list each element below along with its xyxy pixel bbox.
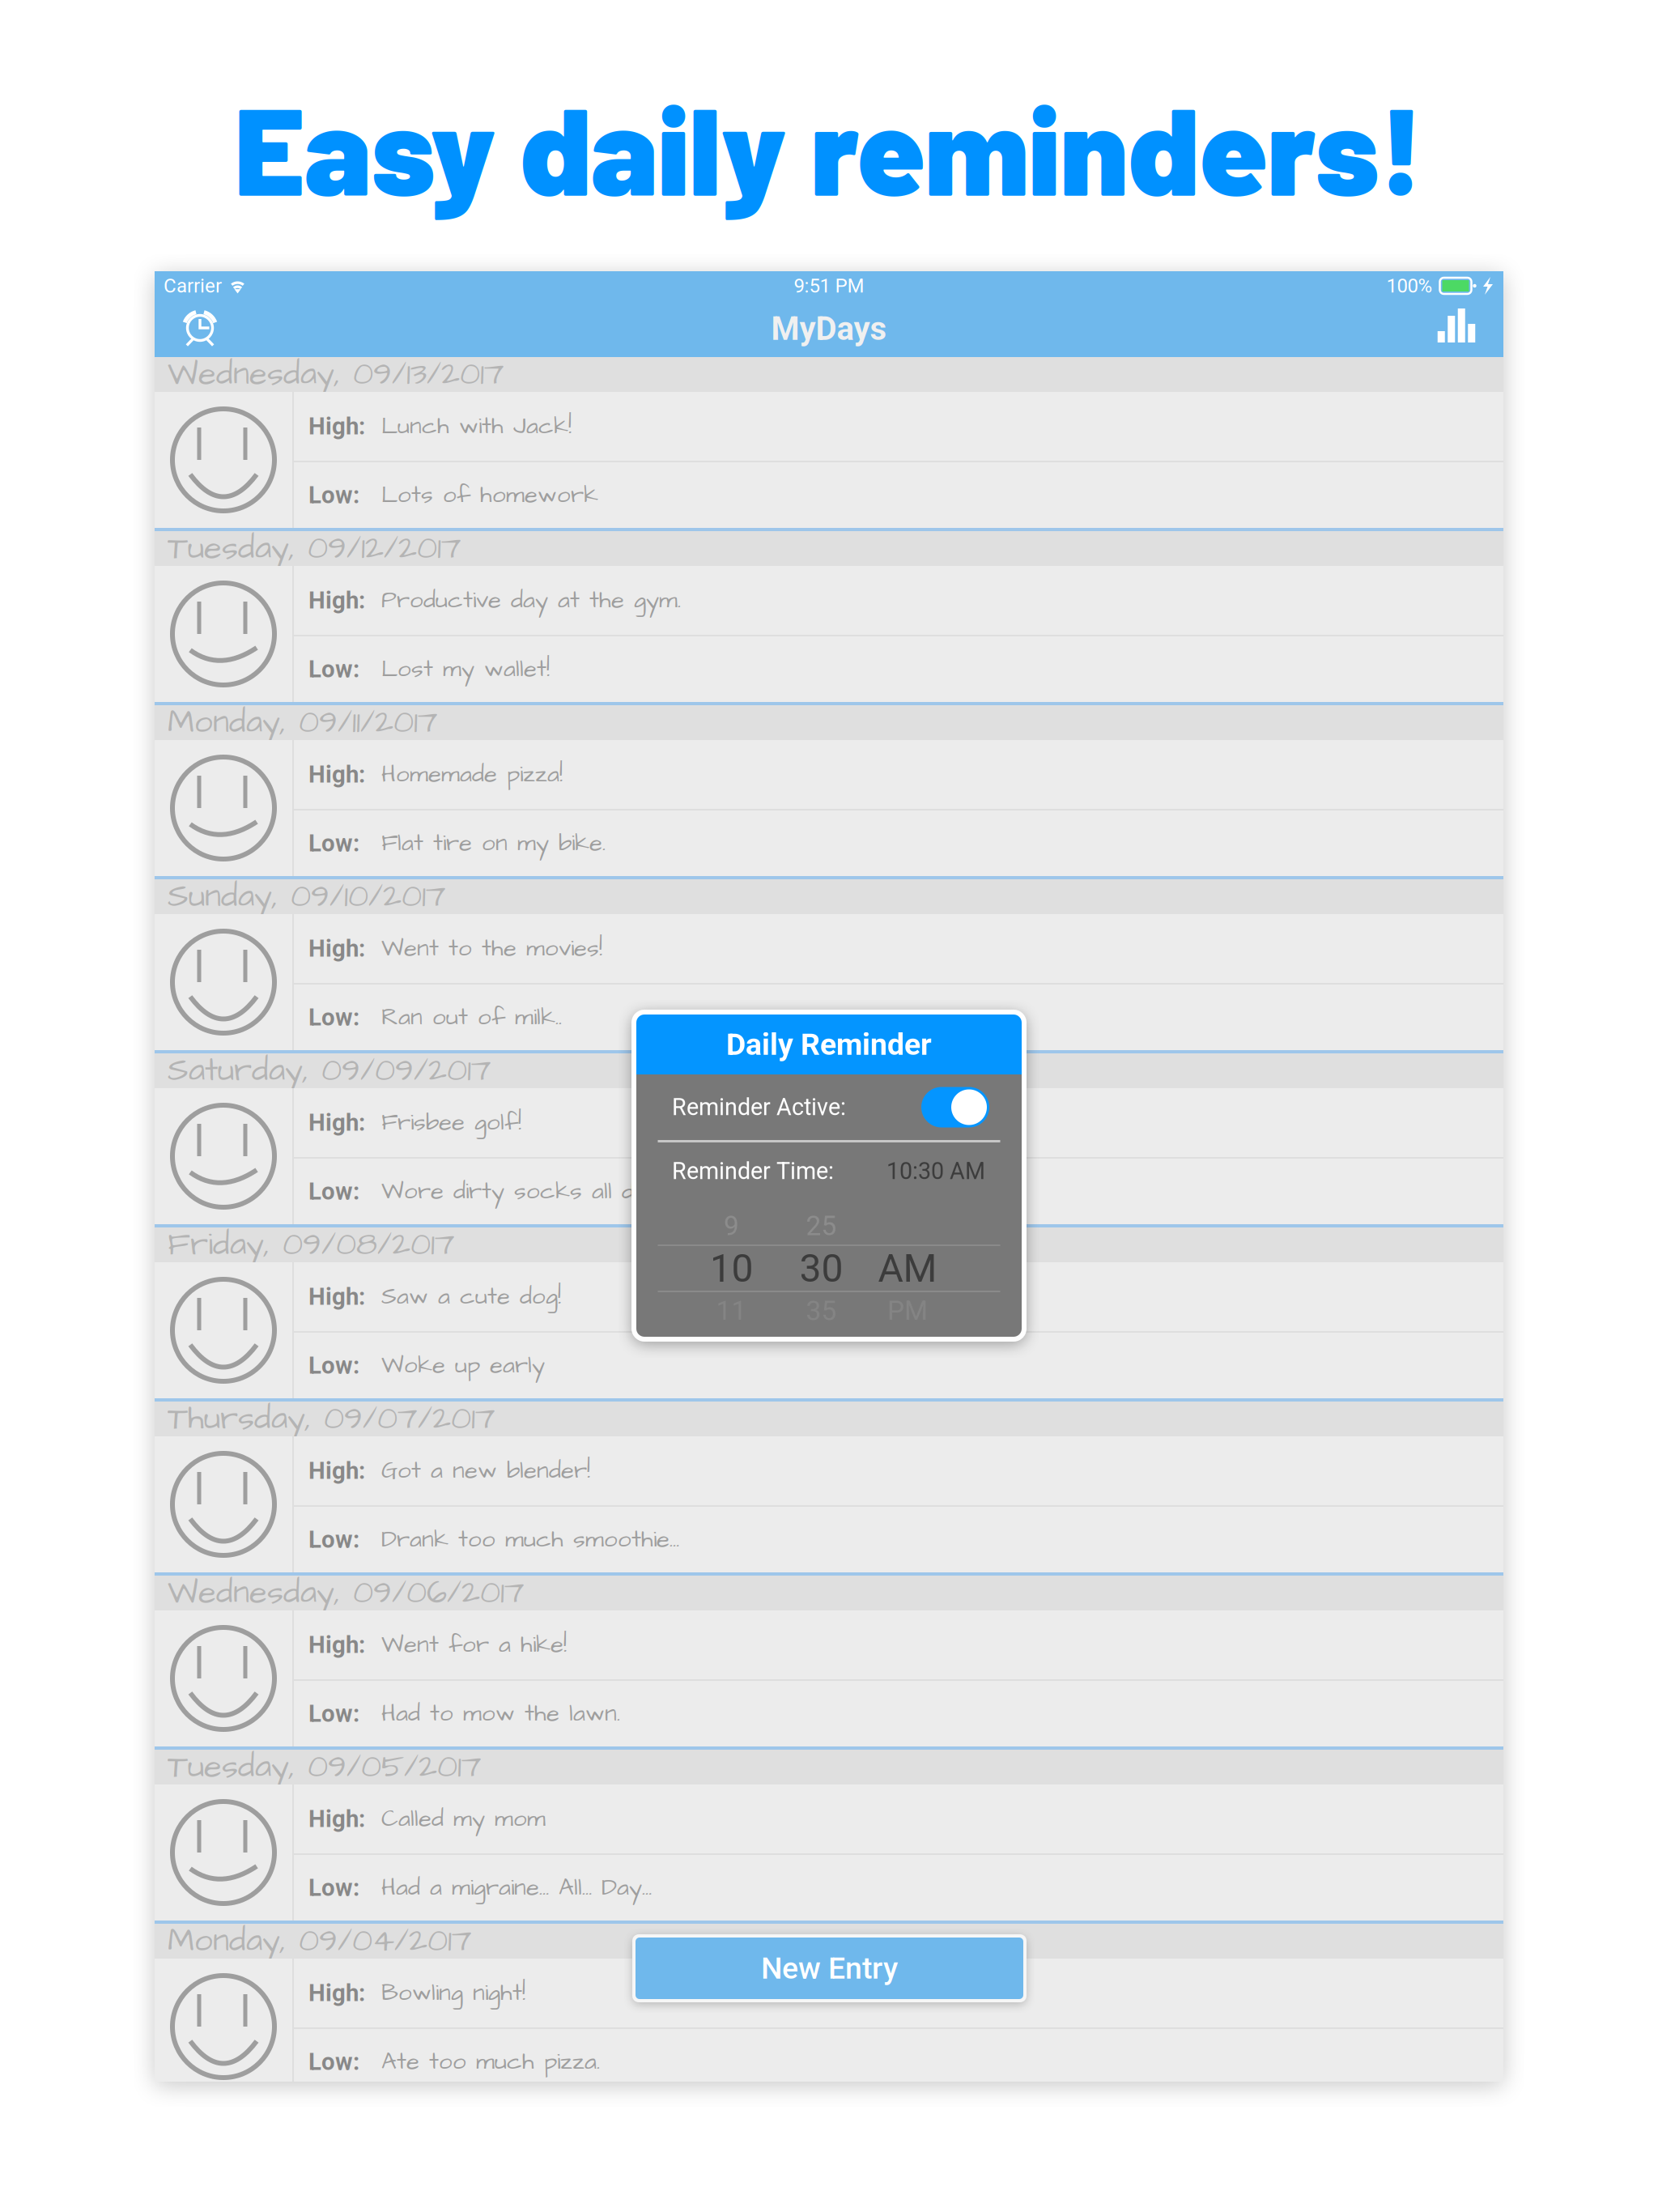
staticText: Reminder Active: (672, 1094, 846, 1121)
staticText: Flat tire on my bike. (381, 827, 606, 860)
staticText: 10 (710, 1246, 753, 1291)
staticText: Saturday, 09/09/2017 (168, 1048, 491, 1093)
staticText: High: (308, 1805, 365, 1833)
staticText: Lunch with Jack! (381, 410, 572, 443)
staticText: High: (308, 586, 365, 614)
staticText: Monday, 09/11/2017 (168, 700, 438, 745)
staticText: High: (308, 1979, 365, 2007)
staticText: Saw a cute dog! (381, 1280, 561, 1313)
staticText: Low: (308, 829, 359, 857)
staticText: 30 (799, 1246, 843, 1291)
staticText: MyDays (771, 310, 887, 348)
staticText: Called my mom (381, 1802, 546, 1835)
staticText: Low: (308, 2048, 359, 2076)
staticText: High: (308, 761, 365, 788)
staticText: Low: (308, 655, 359, 683)
staticText: 35 (806, 1295, 837, 1327)
staticText: Low: (308, 1526, 359, 1554)
staticText: Friday, 09/08/2017 (168, 1222, 455, 1267)
staticText: Low: (308, 1352, 359, 1379)
staticText: Productive day at the gym. (381, 584, 681, 617)
staticText: Wednesday, 09/06/2017 (168, 1571, 525, 1616)
staticText: Reminder Time: (672, 1158, 834, 1185)
staticText: Low: (308, 1874, 359, 1902)
staticText: Wednesday, 09/13/2017 (168, 352, 504, 397)
staticText: Tuesday, 09/05/2017 (168, 1745, 482, 1790)
staticText: 9 (724, 1210, 739, 1242)
staticText: Carrier (164, 274, 222, 297)
staticText: Monday, 09/04/2017 (168, 1919, 472, 1964)
staticText: AM (878, 1246, 937, 1291)
staticText: 9:51 PM (794, 274, 864, 297)
staticText: 25 (806, 1210, 837, 1242)
staticText: High: (308, 412, 365, 440)
staticText: New Entry (761, 1951, 898, 1986)
staticText: Lost my wallet! (381, 653, 550, 686)
staticText: Had a migraine… All… Day… (381, 1871, 652, 1904)
staticText: 10:30 AM (886, 1158, 985, 1185)
staticText: High: (308, 935, 365, 962)
staticText: Got a new blender! (381, 1454, 590, 1487)
staticText: Low: (308, 1003, 359, 1031)
staticText: Had to mow the lawn. (381, 1697, 620, 1730)
button[interactable]: New Entry (632, 1934, 1027, 2002)
staticText: Ate too much pizza. (381, 2045, 600, 2078)
staticText: Drank too much smoothie… (381, 1523, 679, 1556)
staticText: 100% (1386, 274, 1433, 297)
staticText: Went for a hike! (381, 1628, 567, 1661)
staticText: Homemade pizza! (381, 758, 563, 791)
staticText: Wore dirty socks all day. (381, 1175, 662, 1208)
staticText: Woke up early (381, 1349, 545, 1382)
staticText: Easy daily reminders! (234, 73, 1424, 220)
staticText: Daily Reminder (726, 1027, 932, 1062)
staticText: Thursday, 09/07/2017 (168, 1396, 495, 1441)
staticText: High: (308, 1283, 365, 1311)
staticText: High: (308, 1109, 365, 1137)
staticText: High: (308, 1457, 365, 1485)
staticText: Low: (308, 481, 359, 509)
staticText: Frisbee golf! (381, 1106, 521, 1139)
staticText: Low: (308, 1700, 359, 1728)
staticText: Went to the movies! (381, 932, 602, 965)
staticText: High: (308, 1631, 365, 1659)
staticText: Bowling night! (381, 1976, 525, 2010)
staticText: PM (887, 1295, 928, 1327)
staticText: Lots of homework (381, 479, 598, 512)
button[interactable]: Statistics (1435, 303, 1484, 355)
staticText: Tuesday, 09/12/2017 (168, 526, 461, 571)
staticText: Low: (308, 1177, 359, 1205)
button[interactable]: Daily reminder (174, 303, 223, 355)
staticText: Sunday, 09/10/2017 (168, 874, 446, 919)
staticText: 11 (716, 1295, 747, 1327)
staticText: Ran out of milk.. (381, 1001, 562, 1034)
